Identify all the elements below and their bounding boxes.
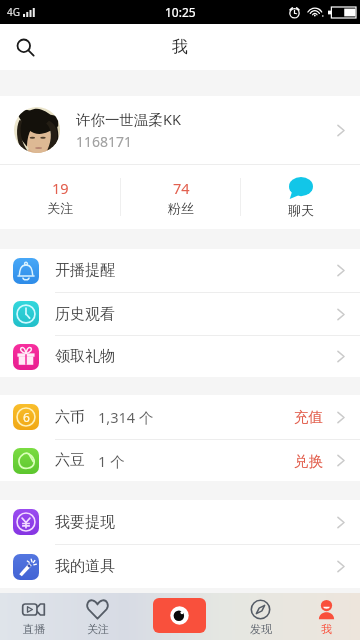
button[interactable]: 发现 (227, 593, 293, 640)
button[interactable]: 我的道具 (0, 545, 360, 588)
button[interactable]: 我 (293, 593, 359, 640)
staticText: 领取礼物 (55, 347, 115, 366)
staticText: 10:25 (165, 4, 196, 20)
button[interactable]: 6 (0, 395, 360, 439)
staticText: 兑换 (294, 452, 323, 470)
staticText: 6 (23, 409, 30, 425)
staticText: 19 (52, 178, 69, 198)
staticText: 1168171 (76, 132, 133, 151)
staticText: 开播提醒 (55, 261, 115, 280)
staticText: 4G (7, 5, 20, 19)
staticText: 74 (173, 178, 190, 198)
button[interactable]: 六豆 (0, 440, 360, 481)
staticText: 我 (172, 37, 188, 57)
button[interactable]: Search (8, 30, 42, 64)
staticText: 1 个 (98, 451, 125, 471)
staticText: 我要提现 (55, 513, 115, 532)
button[interactable]: 许你一世温柔KK (0, 96, 360, 164)
staticText: 六豆 (55, 451, 85, 470)
button[interactable]: 历史观看 (0, 293, 360, 335)
button[interactable]: 聊天 (241, 165, 360, 229)
button[interactable]: 我要提现 (0, 500, 360, 544)
staticText: 历史观看 (55, 305, 115, 324)
staticText: 六币 (55, 408, 85, 427)
staticText: 充值 (294, 408, 323, 426)
button[interactable]: 领取礼物 (0, 336, 360, 377)
staticText: 直播 (23, 622, 45, 636)
staticText: 关注 (47, 200, 73, 216)
button[interactable]: 直播 (0, 593, 66, 640)
staticText: 我的道具 (55, 557, 115, 576)
button[interactable]: 关注 (64, 593, 130, 640)
staticText: 许你一世温柔KK (76, 109, 181, 129)
button[interactable]: Go live (153, 598, 206, 633)
staticText: 聊天 (288, 202, 314, 218)
staticText: 我 (321, 622, 332, 636)
button[interactable]: 74 (121, 165, 240, 229)
staticText: 关注 (87, 622, 109, 636)
button[interactable]: 开播提醒 (0, 249, 360, 292)
staticText: 1,314 个 (98, 407, 154, 427)
staticText: 发现 (250, 622, 272, 636)
staticText: 粉丝 (168, 200, 194, 216)
button[interactable]: 19 (0, 165, 120, 229)
